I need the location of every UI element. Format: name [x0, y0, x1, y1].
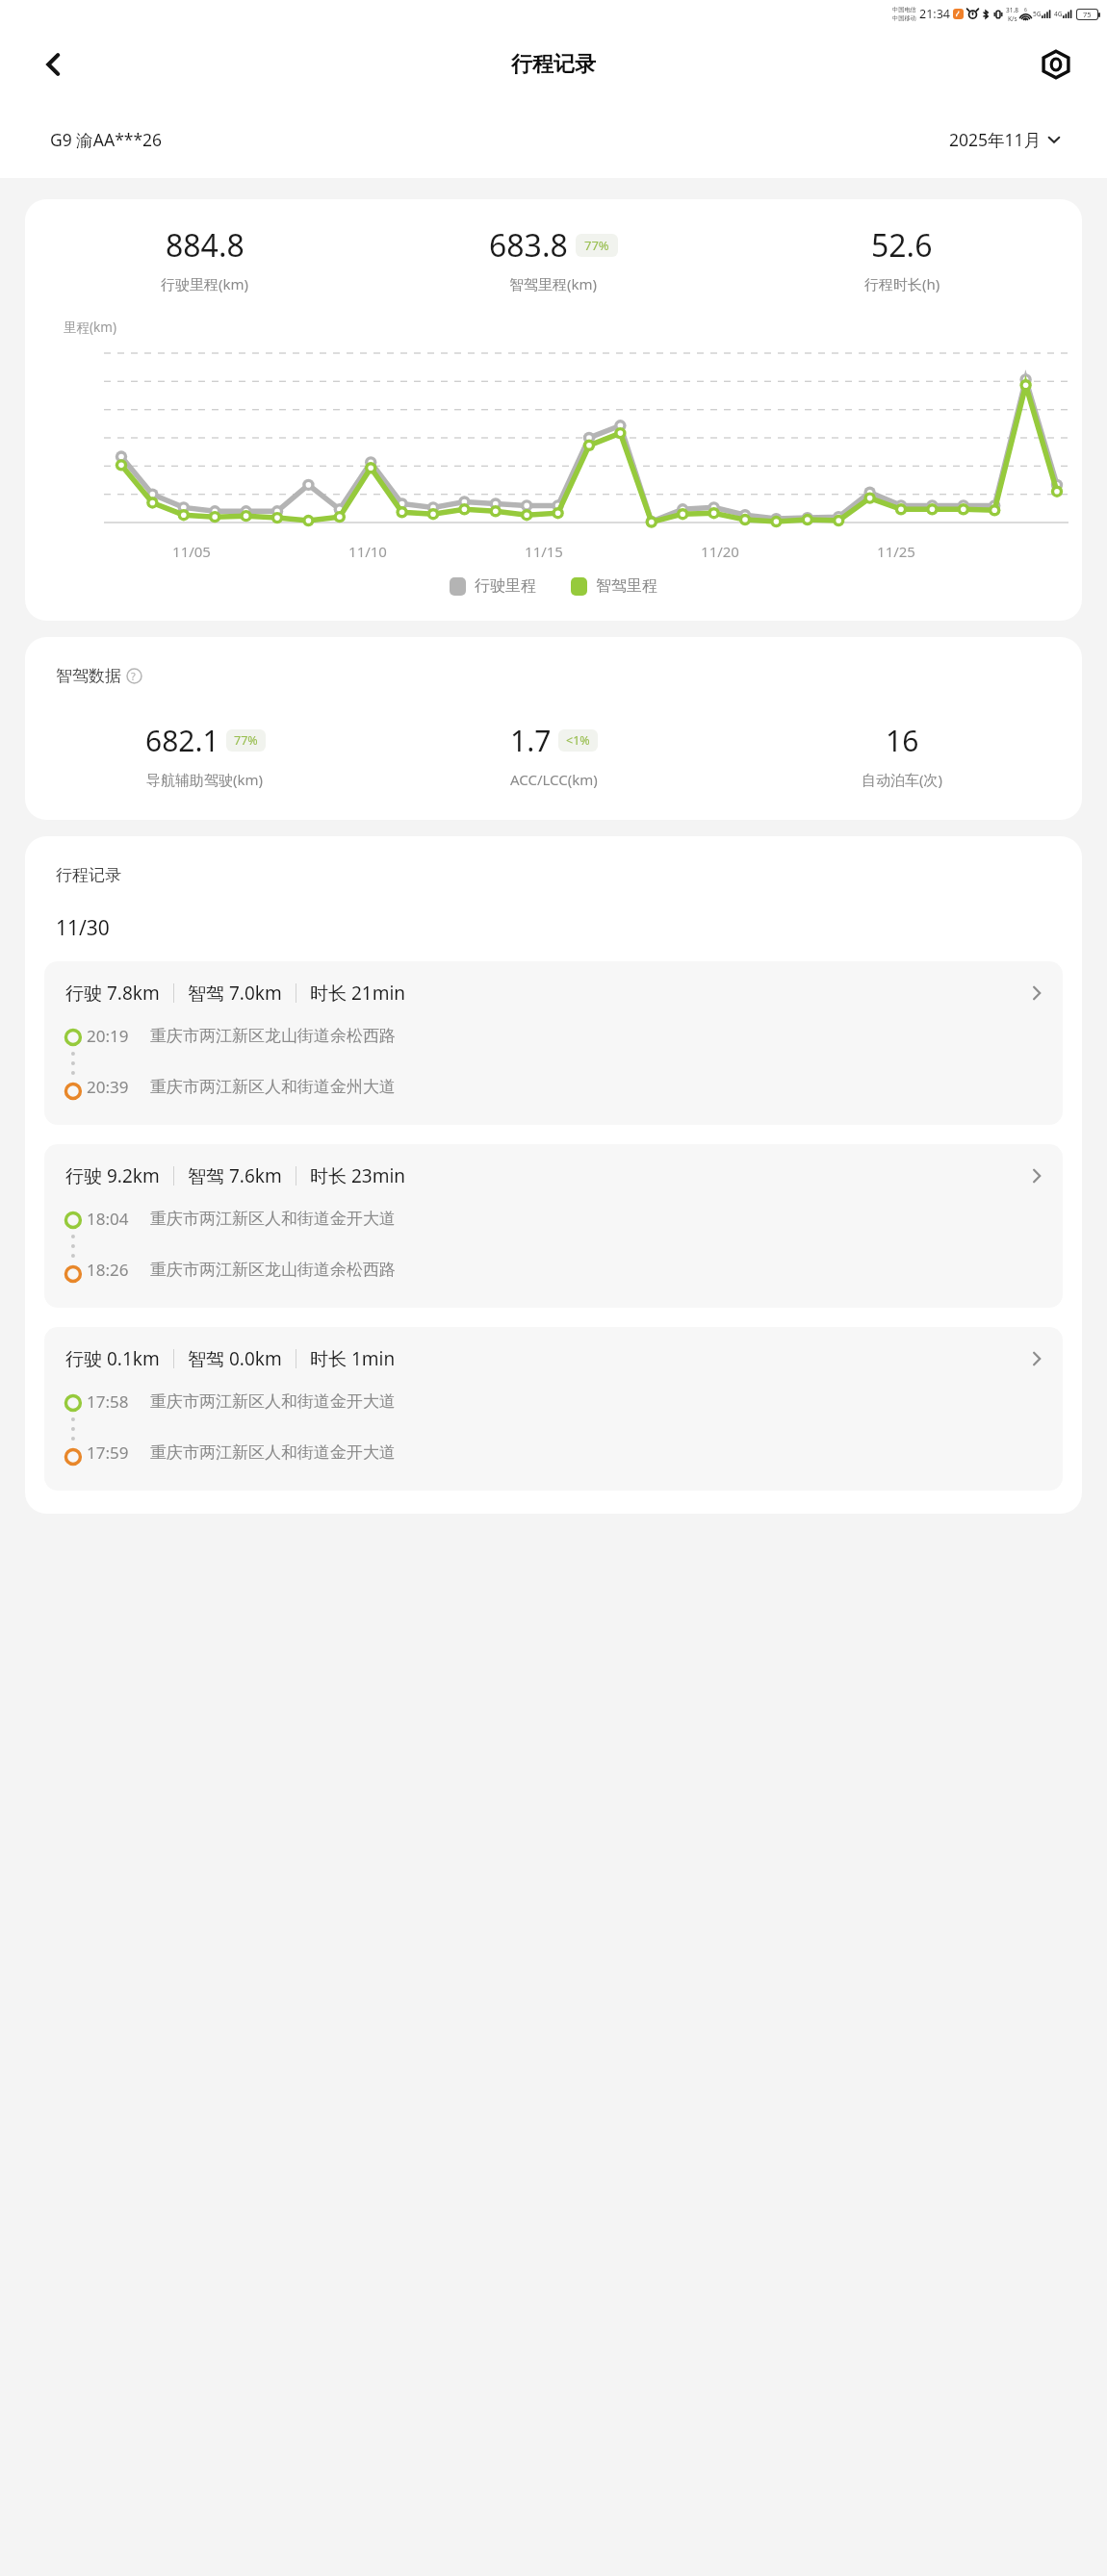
staticText: 884.8 [166, 224, 245, 267]
staticText: 行驶里程(km) [161, 274, 249, 293]
button[interactable]: 行驶 9.2km [44, 1144, 1063, 1308]
staticText: 导航辅助驾驶(km) [146, 770, 264, 789]
staticText: 重庆市两江新区人和街道金开大道 [150, 1209, 396, 1229]
staticText: 18:26 [87, 1259, 129, 1281]
button[interactable]: 行驶里程 [450, 576, 536, 596]
staticText: 智驾数据 [56, 666, 121, 686]
staticText: G9 渝AA***26 [50, 128, 163, 151]
staticText: 52.6 [871, 224, 933, 267]
staticText: 行程记录 [511, 51, 596, 78]
staticText: 683.8 [489, 224, 568, 267]
staticText: <1% [566, 732, 590, 749]
staticText: 智驾 7.0km [188, 981, 282, 1006]
staticText: 11/25 [877, 542, 915, 561]
staticText: 智驾 7.6km [188, 1163, 282, 1188]
staticText: 20:19 [87, 1025, 129, 1047]
staticText: 11/15 [525, 542, 563, 561]
staticText: 重庆市两江新区人和街道金开大道 [150, 1442, 396, 1463]
staticText: 5G [1033, 10, 1042, 18]
staticText: 时长 23min [310, 1163, 406, 1188]
button[interactable]: 行驶 0.1km [44, 1327, 1063, 1491]
staticText: 重庆市两江新区龙山街道余松西路 [150, 1260, 396, 1280]
staticText: ACC/LCC(km) [510, 770, 598, 789]
staticText: 时长 1min [310, 1346, 396, 1371]
staticText: 智驾 0.0km [188, 1346, 282, 1371]
staticText: 17:58 [87, 1390, 129, 1413]
staticText: 2025年11月 [949, 128, 1042, 151]
button[interactable]: 2025年11月 [949, 128, 1061, 151]
staticText: 重庆市两江新区龙山街道余松西路 [150, 1026, 396, 1046]
staticText: 20:39 [87, 1076, 129, 1098]
button[interactable]: Back [27, 38, 81, 91]
staticText: 1.7 [510, 721, 552, 760]
staticText: 6 [1024, 7, 1027, 13]
staticText: 行驶 7.8km [65, 981, 160, 1006]
staticText: 11/05 [172, 542, 211, 561]
staticText: 中国移动 [892, 14, 916, 22]
staticText: ? [131, 669, 136, 683]
staticText: 11/30 [56, 914, 110, 942]
staticText: 11/10 [348, 542, 387, 561]
staticText: 682.1 [145, 721, 219, 760]
button[interactable]: 智驾里程 [571, 576, 657, 596]
staticText: 里程(km) [64, 319, 116, 336]
button[interactable]: 行驶 7.8km [44, 961, 1063, 1125]
staticText: 行驶 9.2km [65, 1163, 160, 1188]
button[interactable]: 智驾数据 [56, 666, 147, 686]
staticText: 77% [234, 732, 258, 749]
staticText: 31.8 [1006, 6, 1018, 14]
staticText: 21:34 [919, 6, 950, 22]
staticText: 4G [1054, 10, 1063, 18]
staticText: 75 [1083, 10, 1092, 19]
staticText: 行程时长(h) [864, 274, 940, 293]
staticText: 智驾里程(km) [509, 274, 598, 293]
staticText: K/s [1008, 14, 1017, 23]
staticText: 智驾里程 [596, 576, 657, 596]
button[interactable]: Settings [1030, 38, 1082, 90]
staticText: 11/20 [701, 542, 739, 561]
staticText: 中国电信 [892, 6, 916, 13]
staticText: 自动泊车(次) [862, 770, 943, 789]
staticText: 行驶里程 [475, 576, 536, 596]
staticText: 18:04 [87, 1208, 129, 1230]
staticText: 16 [886, 721, 919, 760]
staticText: 重庆市两江新区人和街道金州大道 [150, 1077, 396, 1097]
staticText: 行程记录 [56, 865, 121, 885]
staticText: 行驶 0.1km [65, 1346, 160, 1371]
staticText: 重庆市两江新区人和街道金开大道 [150, 1391, 396, 1412]
staticText: 17:59 [87, 1441, 129, 1464]
staticText: 77% [584, 237, 609, 254]
staticText: 时长 21min [310, 981, 406, 1006]
